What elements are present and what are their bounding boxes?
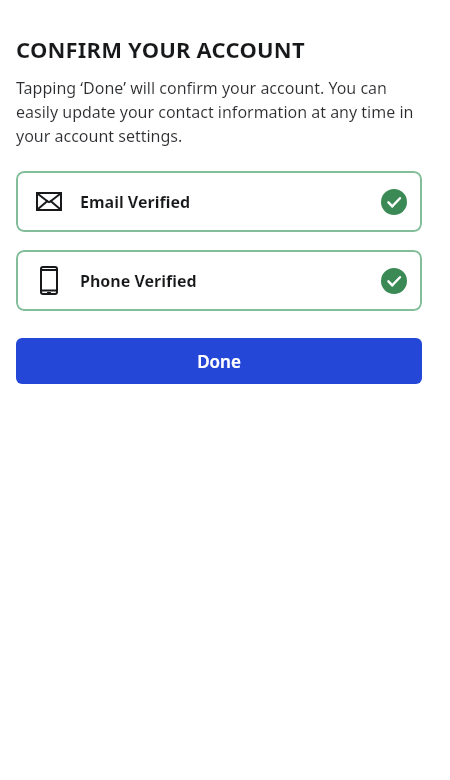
other: Phone — [40, 266, 58, 295]
button[interactable]: Phone — [16, 250, 422, 311]
staticText: CONFIRM YOUR ACCOUNT — [16, 34, 305, 64]
staticText: Tapping ‘Done’ will confirm your account… — [16, 77, 428, 147]
other: Verified — [381, 268, 407, 294]
staticText: Done — [197, 350, 241, 373]
staticText: Phone Verified — [80, 270, 197, 292]
other: Email — [36, 192, 62, 211]
staticText: Email Verified — [80, 191, 191, 213]
other: Verified — [381, 189, 407, 215]
button[interactable]: Email — [16, 171, 422, 232]
button[interactable]: Done — [16, 338, 422, 384]
